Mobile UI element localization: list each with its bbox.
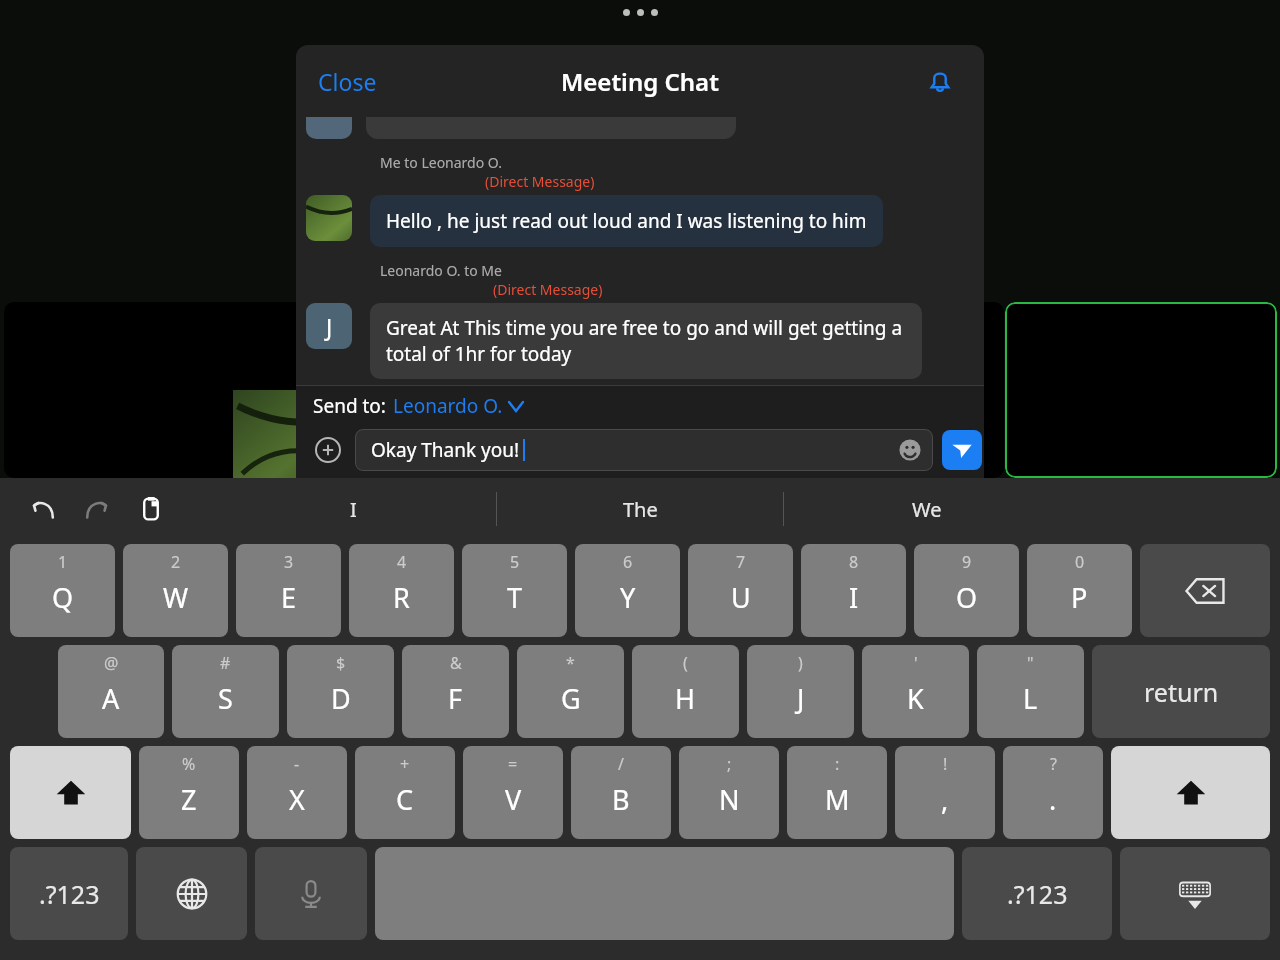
staticText: O [956,579,978,616]
button[interactable]: 7 [688,544,793,637]
staticText: ! [943,753,948,775]
button[interactable]: Backspace [1140,544,1270,637]
staticText: return [1144,675,1219,709]
staticText: P [1071,579,1088,616]
staticText: .?123 [1007,877,1068,911]
button[interactable]: Add attachment [306,428,350,472]
button[interactable]: Paste [128,486,174,532]
staticText: G [561,680,581,717]
button[interactable]: Shift [10,746,131,839]
button[interactable]: Leonardo O. [391,393,525,419]
staticText: % [182,753,196,775]
staticText: Hello , he just read out loud and I was … [386,208,867,234]
staticText: B [612,781,630,818]
button[interactable]: 3 [236,544,341,637]
staticText: I [849,579,859,616]
staticText: 5 [510,551,520,573]
button[interactable]: / [571,746,671,839]
button[interactable]: * [517,645,624,738]
button[interactable]: I [211,480,496,538]
button[interactable]: $ [287,645,394,738]
button[interactable]: @ [58,645,164,738]
staticText: ' [914,652,918,674]
button[interactable]: Emoji [893,433,927,467]
button[interactable]: Change language [136,847,247,940]
staticText: T [507,579,523,616]
button[interactable]: ( [632,645,739,738]
staticText: 1 [58,551,68,573]
button[interactable]: 8 [801,544,906,637]
button[interactable]: = [463,746,563,839]
staticText: - [294,753,300,775]
button[interactable]: The [497,480,783,538]
button[interactable]: Notifications [918,59,962,103]
staticText: C [396,781,414,818]
staticText: E [281,579,297,616]
staticText: / [618,753,624,775]
button[interactable]: & [402,645,509,738]
staticText: 8 [849,551,859,573]
staticText: Close [318,66,377,97]
staticText: Y [620,579,636,616]
button[interactable]: .?123 [10,847,128,940]
button[interactable]: return [1092,645,1270,738]
staticText: = [508,753,518,775]
staticText: Leonardo O. [393,393,503,419]
staticText: 9 [962,551,972,573]
staticText: Send to: [313,393,391,419]
button[interactable]: 0 [1027,544,1132,637]
button[interactable]: 5 [462,544,567,637]
staticText: H [675,680,696,717]
button[interactable]: Voice input [255,847,367,940]
staticText: Leonardo O. to Me [380,261,506,280]
button[interactable]: Undo [20,486,66,532]
button[interactable]: Hello , he just read out loud and I was … [370,195,883,247]
staticText: U [731,579,751,616]
staticText: " [1027,652,1034,674]
button[interactable]: Okay Thank you! [355,429,933,471]
staticText: # [220,652,231,674]
button[interactable]: 1 [10,544,115,637]
staticText: Meeting Chat [561,65,719,98]
staticText: X [289,781,305,818]
button[interactable]: # [172,645,279,738]
button[interactable]: Hide keyboard [1120,847,1270,940]
button[interactable]: " [977,645,1084,738]
button[interactable]: .?123 [962,847,1112,940]
button[interactable]: ? [1003,746,1103,839]
button[interactable]: 9 [914,544,1019,637]
staticText: 3 [284,551,294,573]
staticText: $ [336,652,346,674]
staticText: 4 [397,551,407,573]
staticText: * [566,652,575,674]
button[interactable]: - [247,746,347,839]
staticText: S [218,680,233,717]
staticText: V [505,781,522,818]
button[interactable]: Redo [74,486,120,532]
staticText: L [1023,680,1038,717]
staticText: (Direct Message) [485,172,595,191]
button[interactable]: Shift [1111,746,1270,839]
staticText: Great At This time you are free to go an… [386,315,906,367]
button[interactable]: 4 [349,544,454,637]
button[interactable]: 2 [123,544,228,637]
button[interactable]: : [787,746,887,839]
button[interactable]: ; [679,746,779,839]
staticText: Z [181,781,197,818]
staticText: The [623,496,658,523]
button[interactable]: 6 [575,544,680,637]
button[interactable]: Close [306,58,389,105]
button[interactable]: + [355,746,455,839]
button[interactable]: ) [747,645,854,738]
button[interactable]: Great At This time you are free to go an… [370,303,922,379]
button[interactable]: Send [942,430,982,470]
button[interactable]: ' [862,645,969,738]
staticText: R [393,579,410,616]
staticText: J [797,680,805,717]
button[interactable]: % [139,746,239,839]
button[interactable]: We [784,480,1070,538]
button[interactable]: ! [895,746,995,839]
staticText: 0 [1075,551,1085,573]
staticText: : [835,753,840,775]
